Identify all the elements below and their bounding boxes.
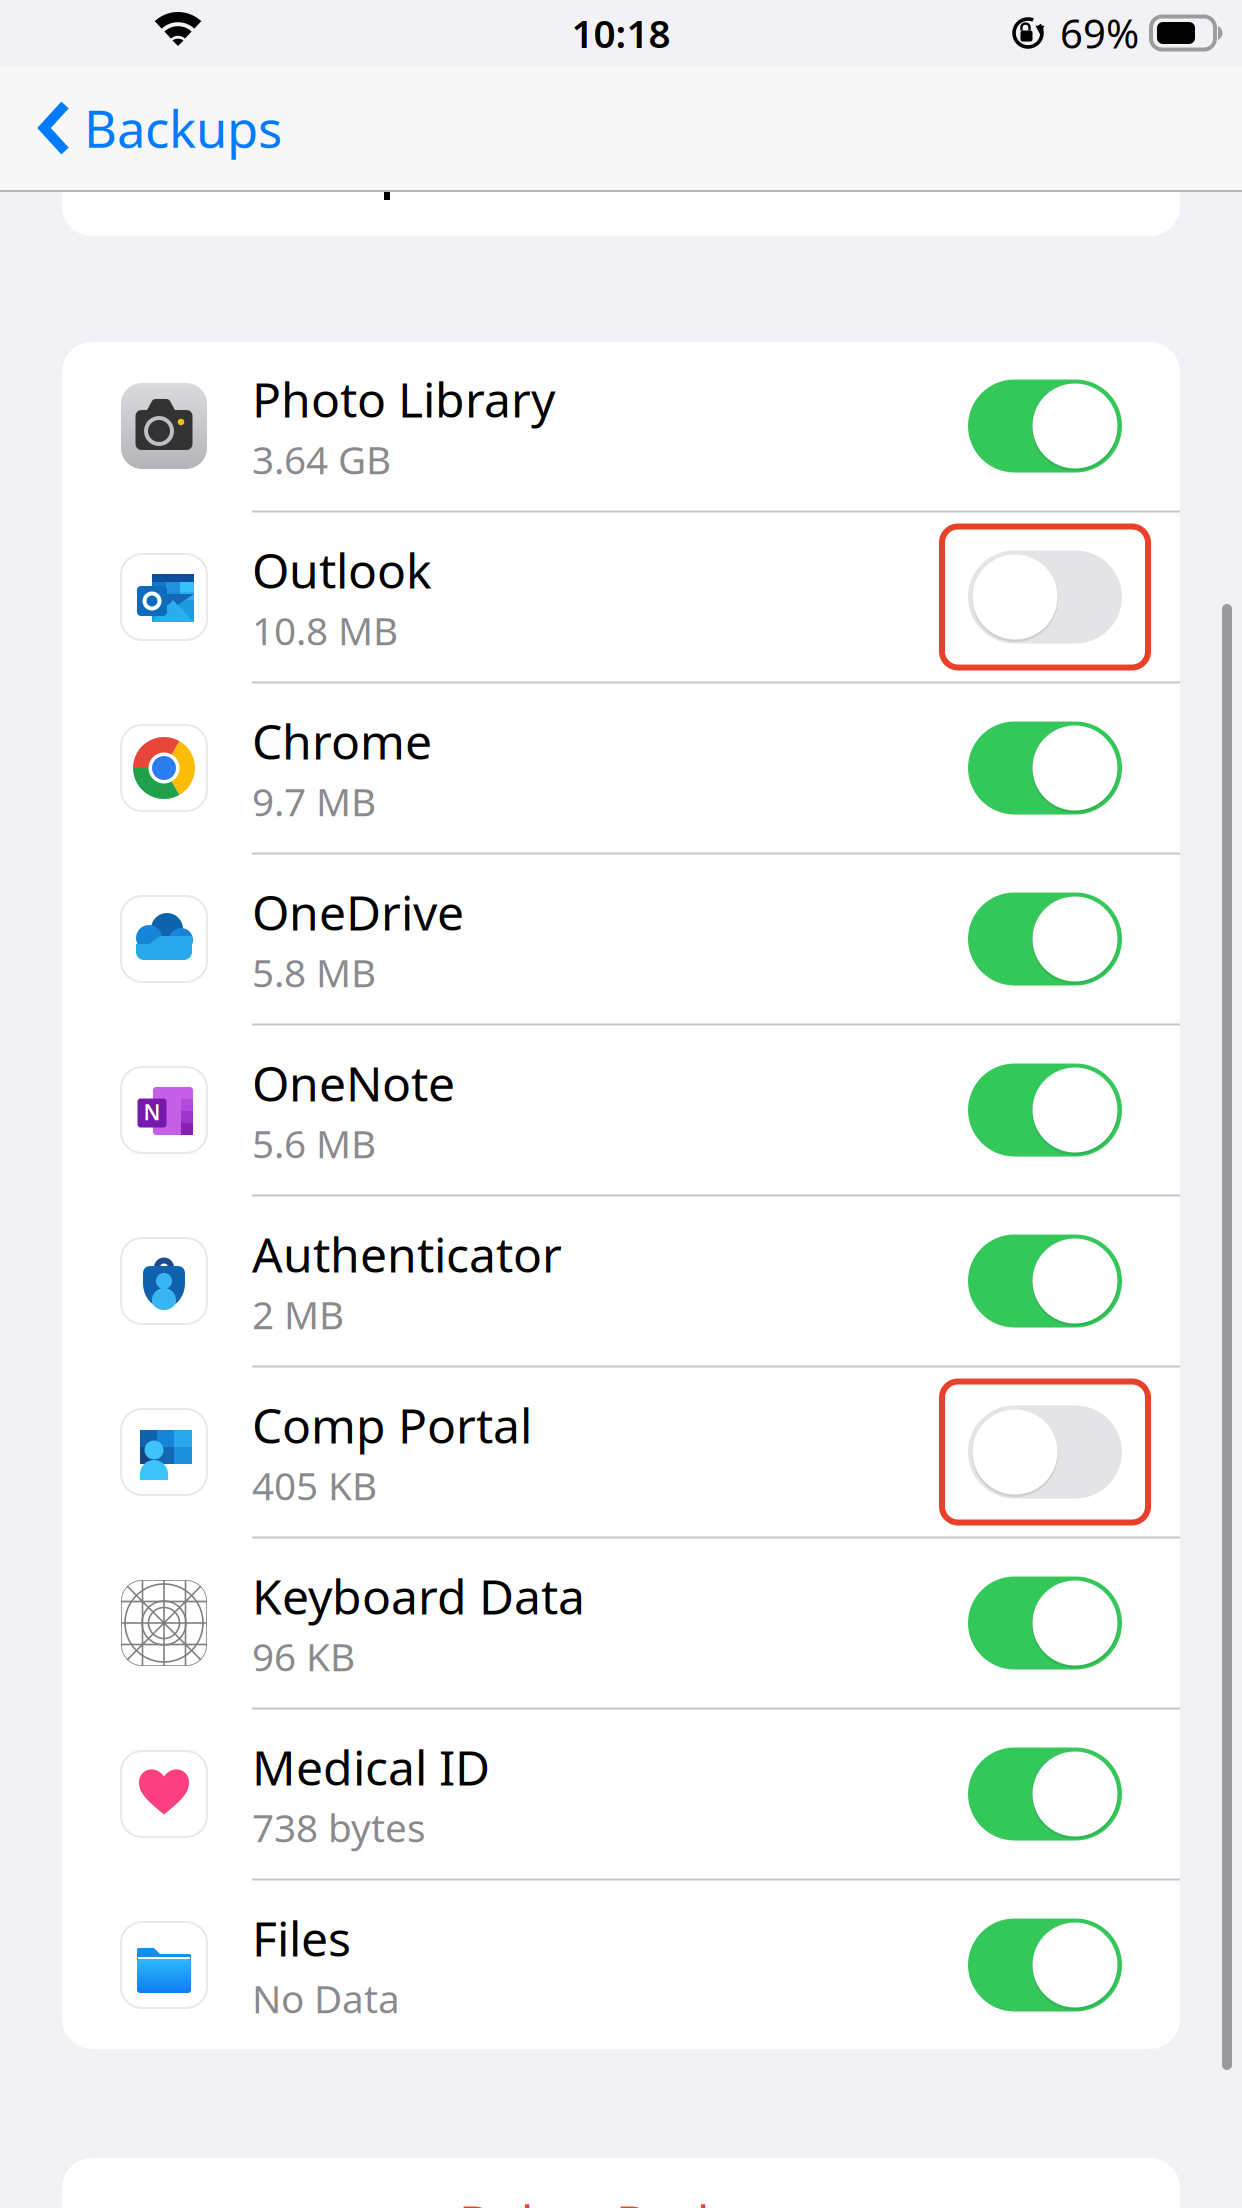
button[interactable]: N — [62, 1025, 1180, 1194]
staticText: 10.8 MB — [252, 605, 398, 656]
staticText: 5.6 MB — [252, 1118, 376, 1169]
button[interactable]: Keyboard Data — [62, 1538, 1180, 1707]
staticText: 69% — [1060, 6, 1139, 59]
staticText: Photo Library — [252, 367, 555, 431]
staticText: Outlook — [252, 538, 432, 602]
staticText: Backups — [84, 94, 282, 162]
staticText: Medical ID — [252, 1735, 490, 1799]
staticText: Authenticator — [252, 1222, 562, 1286]
staticText: N — [143, 1098, 160, 1126]
staticText: Comp Portal — [252, 1393, 532, 1457]
staticText: 738 bytes — [252, 1802, 426, 1853]
staticText: Keyboard Data — [252, 1564, 585, 1628]
button[interactable]: Photo Library — [62, 341, 1180, 510]
staticText: 9.7 MB — [252, 776, 376, 827]
staticText: Delete Backup — [459, 2190, 783, 2208]
staticText: 96 KB — [252, 1631, 355, 1682]
button[interactable]: Outlook — [62, 512, 1180, 681]
button[interactable]: Files — [62, 1880, 1180, 2049]
staticText: OneNote — [252, 1051, 455, 1115]
staticText: OneDrive — [252, 880, 464, 944]
staticText: 2 MB — [252, 1289, 344, 1340]
button[interactable]: Medical ID — [62, 1709, 1180, 1878]
staticText: No Data — [252, 1973, 400, 2024]
button[interactable]: OneDrive — [62, 854, 1180, 1023]
staticText: Files — [252, 1906, 351, 1970]
staticText: 5.8 MB — [252, 947, 376, 998]
staticText: Chrome — [252, 709, 432, 773]
button[interactable]: Delete Backup — [62, 2158, 1180, 2208]
staticText: 405 KB — [252, 1460, 377, 1511]
button[interactable]: Authenticator — [62, 1196, 1180, 1365]
button[interactable]: Backups — [0, 66, 312, 190]
button[interactable]: Comp Portal — [62, 1367, 1180, 1536]
button[interactable]: Chrome — [62, 683, 1180, 852]
staticText: 3.64 GB — [252, 434, 391, 485]
staticText: 10:18 — [571, 7, 670, 59]
